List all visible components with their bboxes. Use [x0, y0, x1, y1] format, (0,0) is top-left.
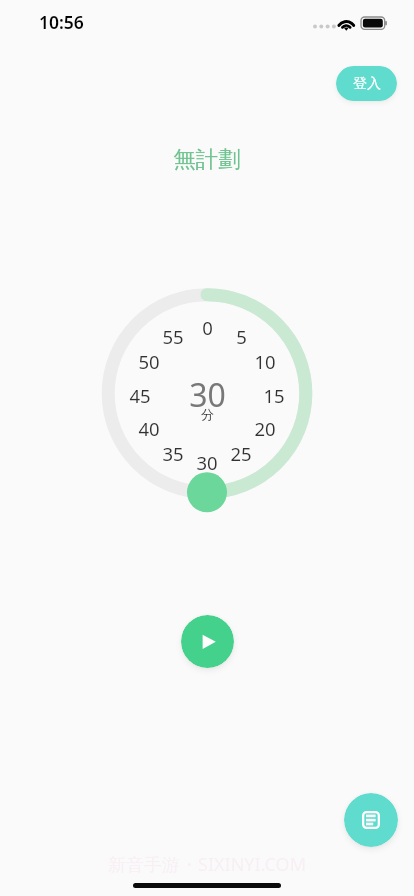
staticText: 25 [230, 441, 252, 465]
staticText: 10 [254, 349, 276, 373]
staticText: 無計劃 [173, 145, 241, 173]
staticText: 30 [189, 373, 226, 413]
staticText: 55 [162, 324, 184, 348]
button[interactable]: Notes [344, 793, 398, 847]
staticText: 0 [202, 315, 213, 339]
staticText: 50 [138, 349, 160, 373]
staticText: 5 [236, 324, 247, 348]
staticText: 20 [254, 416, 276, 440]
staticText: 40 [138, 416, 160, 440]
staticText: 登入 [353, 75, 381, 93]
staticText: 35 [162, 441, 184, 465]
button[interactable]: 登入 [336, 66, 397, 101]
staticText: 新音手游・SIXINYI.COM [108, 852, 306, 877]
staticText: 45 [129, 383, 151, 407]
button[interactable]: Timer dial, 30 minutes [101, 288, 313, 500]
staticText: 30 [196, 450, 218, 474]
button[interactable]: Start [181, 615, 234, 668]
staticText: 15 [263, 383, 285, 407]
staticText: 10:56 [39, 10, 84, 34]
staticText: 分 [201, 406, 214, 422]
